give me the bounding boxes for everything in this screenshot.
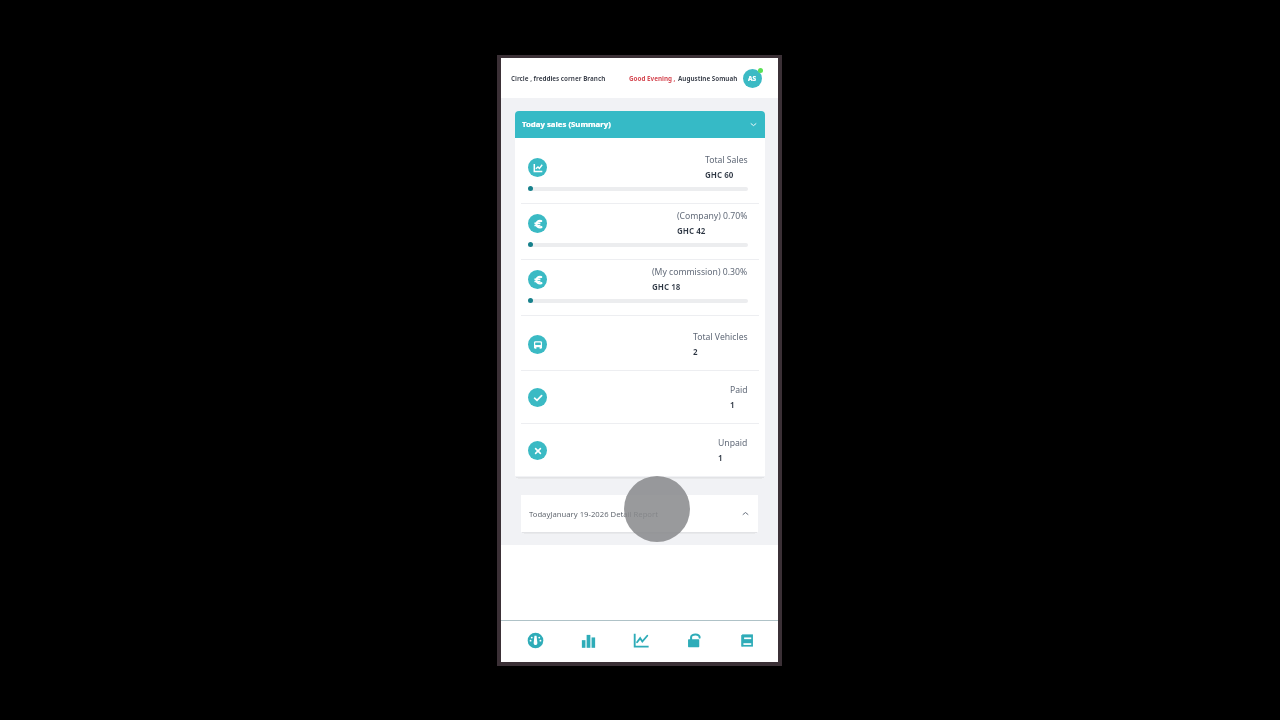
staticText: 2 bbox=[693, 346, 698, 357]
staticText: (My commission) 0.30% bbox=[652, 266, 748, 278]
button[interactable]: Unpaid bbox=[515, 424, 765, 476]
button[interactable]: Total Sales bbox=[515, 148, 765, 203]
staticText: GHC 42 bbox=[677, 225, 706, 236]
staticText: GHC 60 bbox=[705, 169, 734, 180]
staticText: Unpaid bbox=[718, 437, 748, 449]
button[interactable]: Statistics bbox=[562, 621, 615, 660]
staticText: TodayJanuary 19-2026 Detail Report bbox=[529, 509, 658, 519]
button[interactable]: (Company) 0.70% bbox=[515, 204, 765, 259]
staticText: Good Evening , bbox=[629, 74, 678, 83]
staticText: Paid bbox=[730, 384, 748, 396]
button[interactable]: Profile Augustine Somuah bbox=[743, 69, 762, 88]
button[interactable]: Today sales (Summary) bbox=[515, 111, 765, 138]
staticText: Circle , freddies corner Branch bbox=[511, 74, 606, 83]
staticText: Augustine Somuah bbox=[678, 74, 738, 83]
button[interactable]: Paid bbox=[515, 371, 765, 423]
staticText: AS bbox=[748, 74, 757, 83]
staticText: 1 bbox=[718, 452, 723, 463]
button[interactable]: Reports bbox=[721, 621, 774, 660]
button[interactable]: Total Vehicles bbox=[515, 318, 765, 370]
button[interactable]: (My commission) 0.30% bbox=[515, 260, 765, 315]
button[interactable]: Dashboard bbox=[508, 621, 562, 660]
staticText: Total Vehicles bbox=[693, 331, 748, 343]
staticText: (Company) 0.70% bbox=[677, 210, 748, 222]
staticText: GHC 18 bbox=[652, 281, 681, 292]
staticText: Total Sales bbox=[705, 154, 748, 166]
staticText: Today sales (Summary) bbox=[522, 119, 611, 130]
button[interactable]: Trends bbox=[615, 621, 668, 660]
staticText: 1 bbox=[730, 399, 735, 410]
button[interactable]: TodayJanuary 19-2026 Detail Report bbox=[521, 495, 758, 532]
button[interactable]: Unlock bbox=[668, 621, 721, 660]
